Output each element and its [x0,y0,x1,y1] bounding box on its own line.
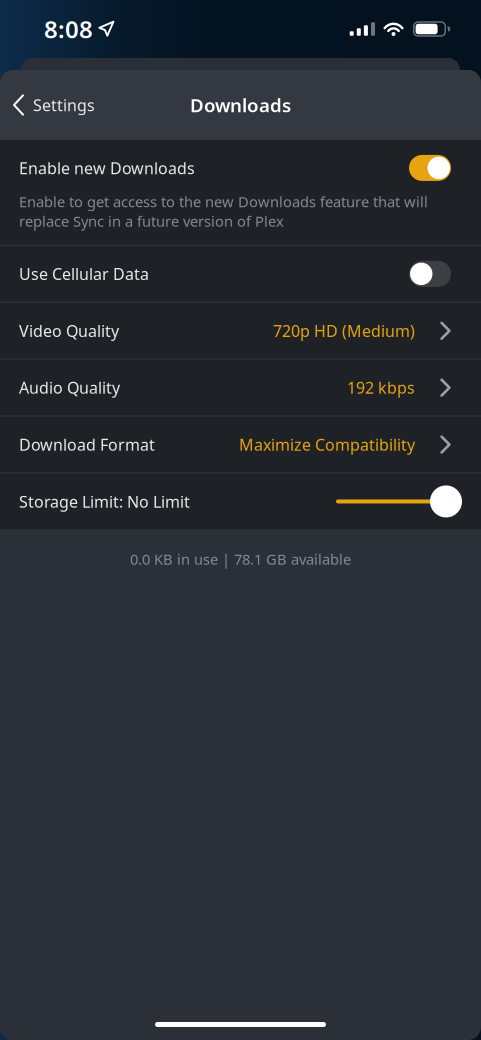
staticText: 720p HD (Medium) [273,320,415,341]
button[interactable]: Audio Quality [0,360,481,416]
button[interactable]: Storage Limit: No Limit [0,473,481,529]
staticText: Download Format [19,434,155,455]
button[interactable]: Download Format [0,417,481,472]
staticText: 8:08 [44,13,93,45]
staticText: Enable to get access to the new Download… [19,192,428,231]
staticText: Settings [33,94,95,116]
staticText: Downloads [190,93,291,117]
staticText: Enable new Downloads [19,157,195,178]
button[interactable]: Enable new Downloads [0,140,481,196]
staticText: Use Cellular Data [19,263,149,284]
staticText: 0.0 KB in use | 78.1 GB available [130,549,351,569]
button[interactable]: Use Cellular Data [0,246,481,302]
staticText: Storage Limit: No Limit [19,491,190,512]
staticText: Video Quality [19,320,119,341]
staticText: 192 kbps [347,377,415,398]
staticText: Audio Quality [19,377,120,398]
staticText: Maximize Compatibility [239,434,415,455]
button[interactable]: Video Quality [0,303,481,359]
button[interactable]: Settings [0,86,95,124]
